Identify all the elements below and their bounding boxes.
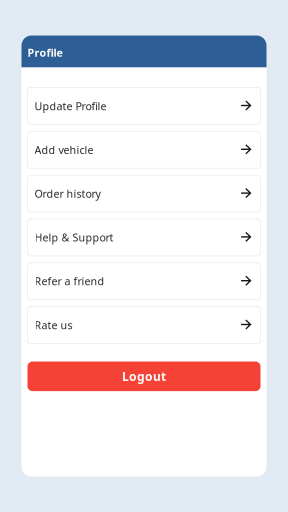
staticText: Refer a friend xyxy=(34,274,104,288)
button[interactable]: Add vehicle xyxy=(27,131,260,168)
staticText: Add vehicle xyxy=(34,143,93,157)
staticText: Profile xyxy=(27,45,62,60)
staticText: Order history xyxy=(34,186,100,201)
button[interactable]: Update Profile xyxy=(27,87,260,124)
staticText: Logout xyxy=(122,368,166,384)
staticText: Help & Support xyxy=(34,230,113,244)
staticText: Update Profile xyxy=(34,99,106,113)
button[interactable]: Help & Support xyxy=(27,219,260,256)
button[interactable]: Rate us xyxy=(27,306,260,343)
button[interactable]: Order history xyxy=(27,175,260,212)
button[interactable]: Logout xyxy=(27,361,260,391)
staticText: Rate us xyxy=(34,318,72,332)
button[interactable]: Refer a friend xyxy=(27,263,260,300)
